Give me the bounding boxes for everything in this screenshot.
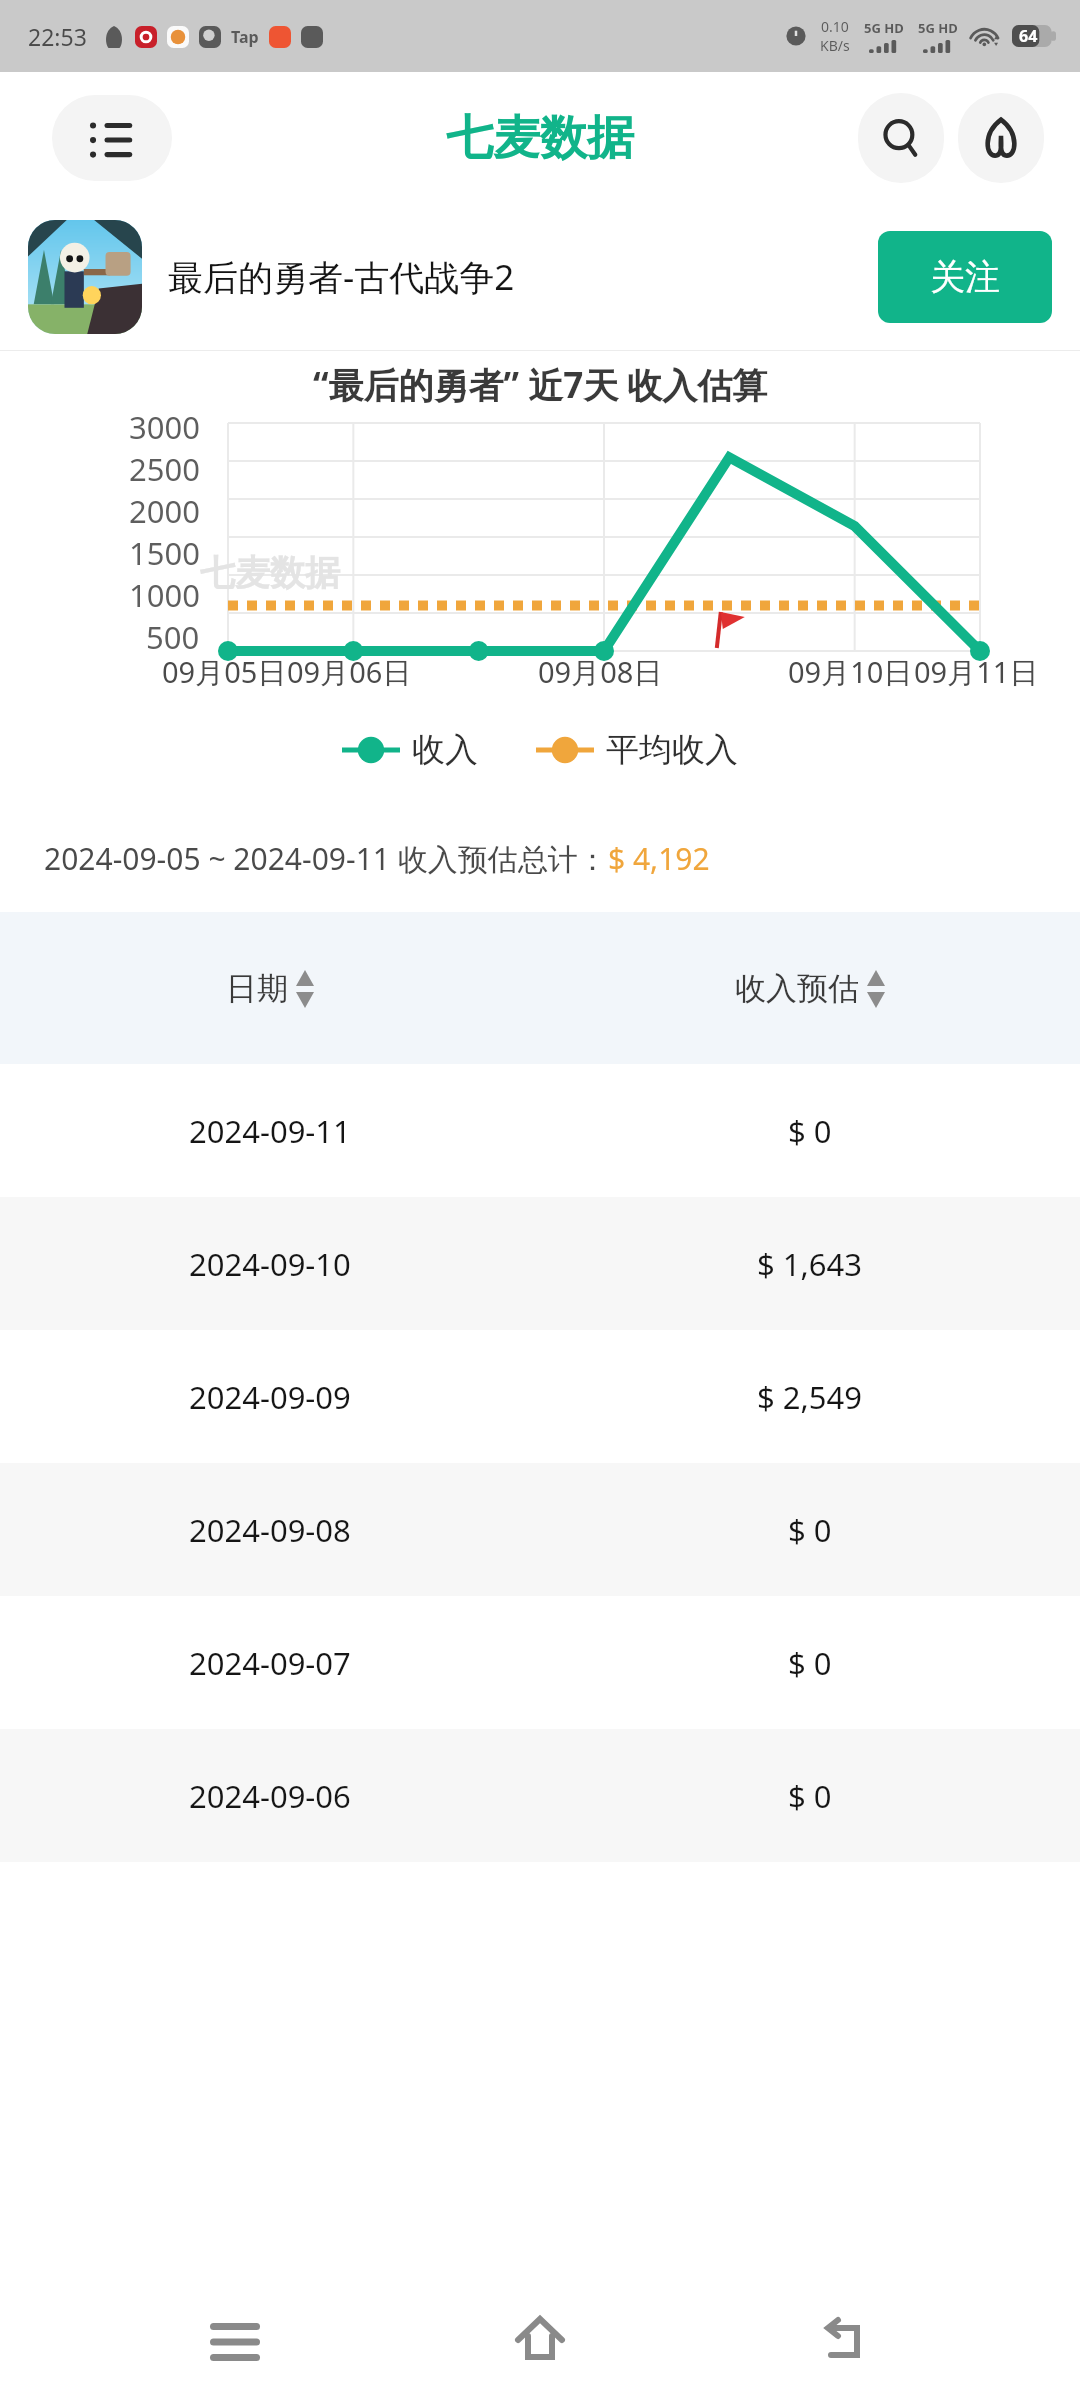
staticText: 2024-09-06 [189, 1775, 351, 1817]
button[interactable]: Home [470, 2284, 610, 2394]
staticText: $ 1,643 [757, 1243, 863, 1285]
button[interactable]: 日期 [0, 912, 540, 1064]
staticText: 3000 [129, 406, 200, 448]
staticText: 七麦数据 [446, 109, 634, 168]
staticText: 最后的勇者-古代战争2 [168, 253, 515, 301]
staticText: 2500 [129, 448, 200, 490]
button[interactable]: Menu [52, 95, 172, 181]
staticText: 2024-09-08 [189, 1509, 351, 1551]
button[interactable]: 平均收入 [536, 729, 738, 771]
staticText: 收入 [412, 729, 478, 771]
staticText: 64 [1019, 25, 1038, 47]
button[interactable]: 2024-09-09 [0, 1330, 1080, 1463]
button[interactable]: Home [958, 93, 1044, 183]
staticText: 平均收入 [606, 729, 738, 771]
button[interactable]: 2024-09-07 [0, 1596, 1080, 1729]
staticText: KB/s [820, 36, 850, 55]
button[interactable] [28, 220, 142, 334]
staticText: 09月06日 [287, 652, 412, 692]
button[interactable]: 2024-09-11 [0, 1064, 1080, 1197]
button[interactable]: 2024-09-06 [0, 1729, 1080, 1862]
button[interactable]: Search [858, 93, 944, 183]
button[interactable]: 收入预估 [540, 912, 1080, 1064]
staticText: 09月05日 [162, 652, 287, 692]
staticText: $ 2,549 [757, 1376, 863, 1418]
button[interactable]: 2024-09-10 [0, 1197, 1080, 1330]
staticText: $ 0 [788, 1509, 832, 1551]
staticText: 关注 [930, 255, 1000, 299]
staticText: $ 0 [788, 1775, 832, 1817]
staticText: 2024-09-09 [189, 1376, 351, 1418]
staticText: 09月10日 [788, 652, 913, 692]
staticText: $ 4,192 [608, 838, 710, 879]
staticText: 2024-09-10 [189, 1243, 351, 1285]
staticText: 09月11日 [914, 652, 1039, 692]
staticText: 日期 [226, 969, 288, 1008]
button[interactable]: Back [775, 2284, 915, 2394]
staticText: 1500 [129, 532, 200, 574]
staticText: $ 0 [788, 1642, 832, 1684]
button[interactable]: 2024-09-08 [0, 1463, 1080, 1596]
button[interactable]: 收入 [342, 729, 478, 771]
staticText: 5G HD [864, 19, 904, 37]
staticText: $ 0 [788, 1110, 832, 1152]
staticText: 收入预估 [735, 969, 859, 1008]
staticText: “最后的勇者” 近7天 收入估算 [313, 361, 768, 409]
staticText: 2024-09-05 ~ 2024-09-11 收入预估总计： [44, 838, 608, 879]
staticText: 1000 [129, 574, 200, 616]
button[interactable]: Recents [165, 2284, 305, 2394]
staticText: 22:53 [28, 21, 87, 52]
staticText: 5G HD [918, 19, 958, 37]
staticText: 0.10 [821, 17, 849, 36]
staticText: Tap [231, 26, 259, 48]
staticText: 2024-09-07 [189, 1642, 351, 1684]
staticText: 0 [182, 658, 200, 668]
staticText: 09月08日 [538, 652, 663, 692]
staticText: 500 [146, 616, 200, 658]
button[interactable]: 关注 [878, 231, 1052, 323]
staticText: 2000 [129, 490, 200, 532]
staticText: 七麦数据 [200, 551, 340, 595]
staticText: 2024-09-11 [189, 1110, 351, 1152]
